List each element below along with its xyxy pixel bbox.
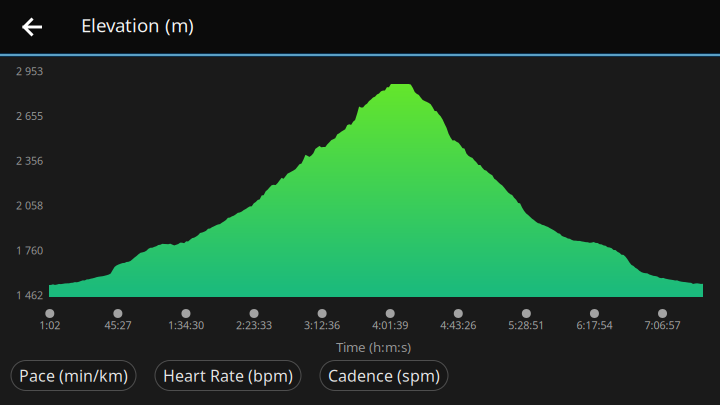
staticText: 2 953: [16, 64, 43, 78]
button[interactable]: Pace (min/km): [11, 360, 136, 390]
staticText: Heart Rate (bpm): [163, 365, 293, 386]
button[interactable]: Heart Rate (bpm): [155, 360, 301, 390]
group: Elevation chart, 1 462 to 2 953 metres: [49, 84, 703, 297]
staticText: 1 462: [16, 288, 43, 302]
staticText: 2 655: [16, 109, 43, 123]
button[interactable]: Back: [8, 4, 56, 50]
staticText: Cadence (spm): [328, 365, 440, 386]
staticText: 5:28:51: [508, 318, 544, 332]
staticText: 4:43:26: [440, 318, 476, 332]
staticText: 45:27: [104, 318, 131, 332]
staticText: Pace (min/km): [19, 365, 128, 386]
staticText: 1:02: [39, 318, 60, 332]
staticText: 2 058: [16, 198, 43, 213]
staticText: 6:17:54: [576, 318, 612, 332]
staticText: 2 356: [16, 154, 43, 168]
button[interactable]: Cadence (spm): [320, 360, 448, 390]
staticText: 2:23:33: [236, 318, 272, 332]
staticText: 3:12:36: [304, 318, 340, 332]
staticText: 1 760: [16, 243, 43, 257]
staticText: 4:01:39: [372, 318, 408, 332]
staticText: Time (h:m:s): [336, 338, 411, 356]
staticText: Elevation (m): [81, 12, 194, 37]
staticText: 7:06:57: [644, 318, 680, 332]
staticText: 1:34:30: [168, 318, 204, 332]
